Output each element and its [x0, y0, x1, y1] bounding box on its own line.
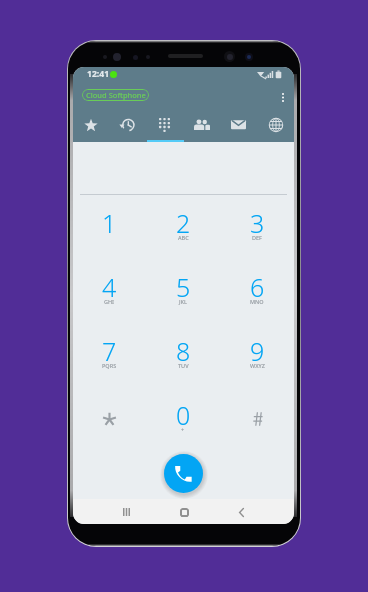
button[interactable]: Dialpad [146, 107, 183, 142]
staticText: GHI [104, 298, 115, 305]
button[interactable]: Back [226, 499, 256, 524]
staticText: 3 [250, 206, 265, 240]
staticText: 7 [102, 334, 117, 368]
staticText: DEF [252, 234, 262, 241]
button[interactable]: 2 [146, 194, 220, 254]
staticText: JKL [179, 298, 188, 305]
staticText: MNO [250, 298, 264, 305]
button[interactable]: Call [164, 454, 203, 493]
staticText: 5 [176, 270, 191, 304]
button[interactable]: Recents [109, 107, 146, 142]
button[interactable]: 7 [73, 322, 146, 382]
staticText: PQRS [102, 362, 117, 369]
staticText: TUV [178, 362, 189, 369]
staticText: 12:41 [87, 68, 110, 80]
button[interactable]: 0 [146, 386, 220, 446]
staticText: 6 [250, 270, 265, 304]
button[interactable]: Cloud Softphone [82, 89, 149, 101]
button[interactable]: Recents [111, 499, 141, 524]
staticText: 0 [176, 398, 191, 432]
staticText: 4 [102, 270, 117, 304]
staticText: Cloud Softphone [86, 90, 146, 100]
button[interactable]: 1 [73, 194, 146, 254]
button[interactable]: Favorites [73, 107, 109, 142]
staticText: + [181, 426, 185, 433]
staticText: WXYZ [250, 362, 265, 369]
button[interactable]: 3 [220, 194, 294, 254]
button[interactable]: Messages [220, 107, 257, 142]
button[interactable] [73, 386, 146, 446]
button[interactable]: 6 [220, 258, 294, 318]
button[interactable]: 8 [146, 322, 220, 382]
button[interactable]: Web [257, 107, 294, 142]
button[interactable]: 4 [73, 258, 146, 318]
button[interactable] [220, 386, 294, 446]
button[interactable]: 9 [220, 322, 294, 382]
staticText: 8 [176, 334, 191, 368]
staticText: 1 [102, 206, 117, 240]
staticText: 9 [250, 334, 265, 368]
button[interactable]: More options [273, 86, 293, 108]
button[interactable]: Contacts [183, 107, 220, 142]
button[interactable]: Home [169, 499, 199, 524]
staticText: 2 [176, 206, 191, 240]
staticText: ABC [178, 234, 189, 241]
button[interactable]: 5 [146, 258, 220, 318]
